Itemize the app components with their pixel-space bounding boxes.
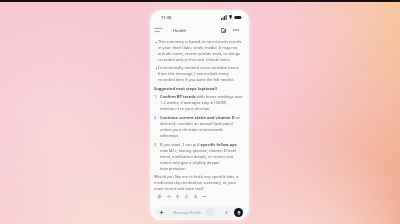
staticText: 11:30 [161,15,172,21]
button[interactable]: Like [174,194,180,199]
staticText: Suggested next steps (optional) [154,86,218,91]
button[interactable]: Menu [153,25,163,35]
staticText: Health [173,28,187,34]
staticText: 3. [154,142,158,147]
staticText: If you want, I can pull specific follow-… [160,142,237,171]
staticText: This summary is based on structured reco… [158,39,242,62]
button[interactable]: Voice input [222,208,230,216]
staticText: I intentionally omitted some sensitive i… [158,65,239,82]
button[interactable]: New chat [218,25,228,35]
button[interactable]: More options [231,25,241,35]
button[interactable]: Read aloud [192,194,198,199]
staticText: Confirm BP trends with home readings ove… [160,94,243,111]
button[interactable]: Add attachment [157,208,165,216]
button[interactable]: Dislike [183,194,189,199]
button[interactable]: More [201,194,207,199]
staticText: Continue current statin and vitamin D as… [160,115,240,138]
button[interactable]: Send [234,208,243,217]
staticText: 1. [154,94,158,99]
staticText: Would you like me to fetch any specific … [154,174,239,191]
button[interactable]: Share [165,194,171,199]
button[interactable]: Copy [156,194,162,199]
staticText: 2. [154,115,158,120]
staticText: Message Health [173,210,202,215]
